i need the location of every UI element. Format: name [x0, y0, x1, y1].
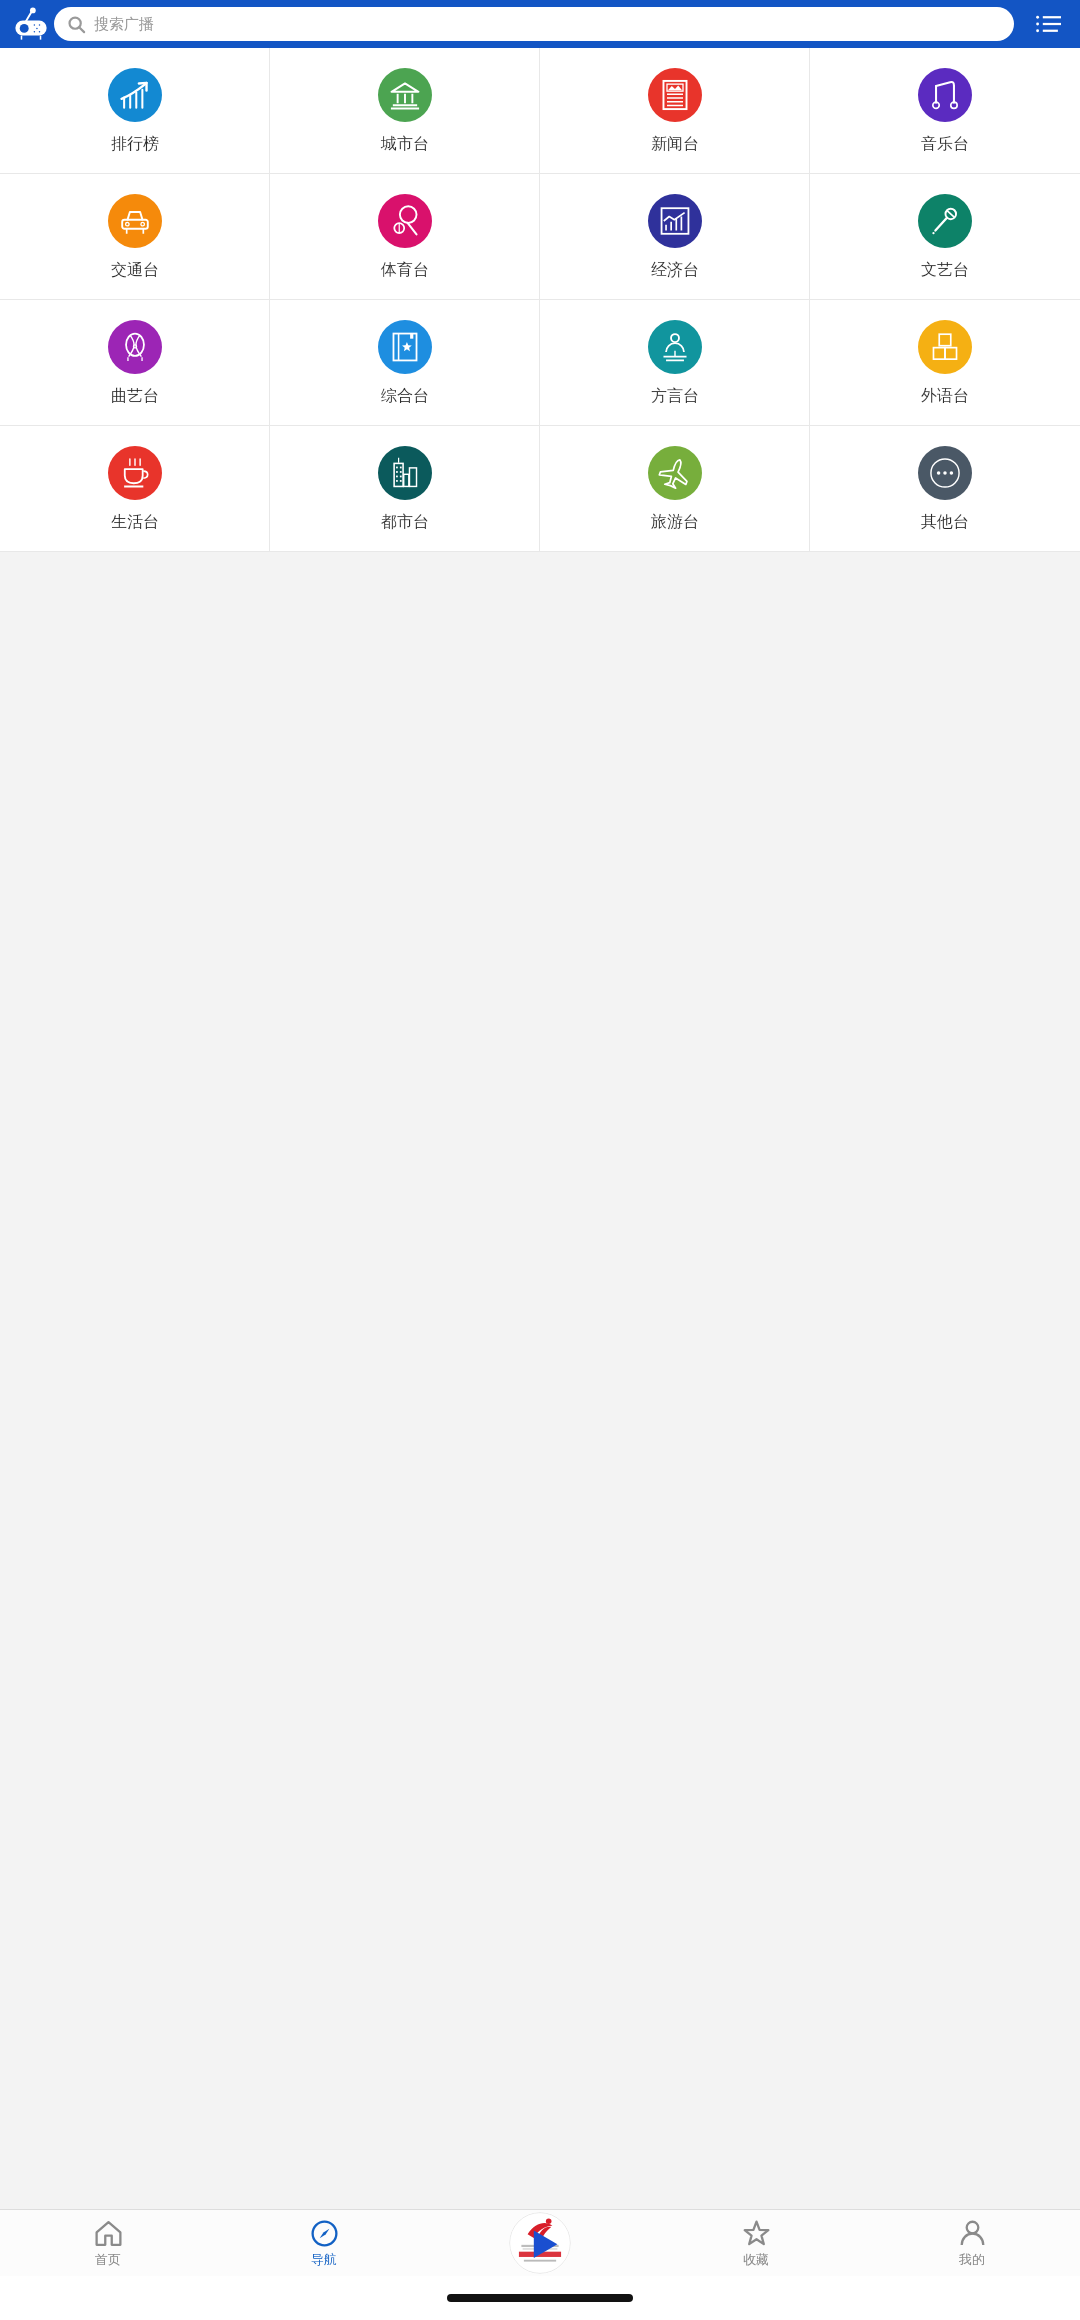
staticText: 收藏	[743, 2251, 769, 2267]
button[interactable]: 我的	[864, 2210, 1080, 2276]
staticText: 体育台	[381, 260, 429, 280]
button[interactable]: 收藏	[648, 2210, 864, 2276]
button[interactable]: Radio	[8, 1, 54, 47]
staticText: 音乐台	[921, 134, 969, 154]
button[interactable]: 都市台	[270, 426, 540, 551]
staticText: 生活台	[111, 512, 159, 532]
button[interactable]: 排行榜	[0, 48, 270, 173]
button[interactable]: List menu	[1026, 2, 1070, 46]
staticText: 旅游台	[651, 512, 699, 532]
button[interactable]: 曲艺台	[0, 300, 270, 425]
button[interactable]: 搜索广播	[54, 7, 1014, 41]
staticText: 经济台	[651, 260, 699, 280]
button[interactable]: 体育台	[270, 174, 540, 299]
button[interactable]: 首页	[0, 2210, 216, 2276]
button[interactable]: 交通台	[0, 174, 270, 299]
staticText: 文艺台	[921, 260, 969, 280]
staticText: 都市台	[381, 512, 429, 532]
button[interactable]: 经济台	[540, 174, 810, 299]
staticText: 导航	[311, 2251, 337, 2267]
button[interactable]: 音乐台	[810, 48, 1080, 173]
staticText: 新闻台	[651, 134, 699, 154]
staticText: 综合台	[381, 386, 429, 406]
staticText: 方言台	[651, 386, 699, 406]
button[interactable]: 文艺台	[810, 174, 1080, 299]
button[interactable]: 生活台	[0, 426, 270, 551]
button[interactable]: 城市台	[270, 48, 540, 173]
staticText: 城市台	[381, 134, 429, 154]
staticText: 曲艺台	[111, 386, 159, 406]
staticText: 其他台	[921, 512, 969, 532]
button[interactable]: 方言台	[540, 300, 810, 425]
staticText: 搜索广播	[94, 15, 154, 34]
button[interactable]: 综合台	[270, 300, 540, 425]
button[interactable]: 外语台	[810, 300, 1080, 425]
staticText: 我的	[959, 2251, 985, 2267]
button[interactable]: 导航	[216, 2210, 432, 2276]
button[interactable]: 新闻台	[540, 48, 810, 173]
button[interactable]: Now playing	[432, 2210, 648, 2276]
staticText: 外语台	[921, 386, 969, 406]
button[interactable]: 其他台	[810, 426, 1080, 551]
staticText: 交通台	[111, 260, 159, 280]
staticText: 首页	[95, 2251, 121, 2267]
staticText: 排行榜	[111, 134, 159, 154]
button[interactable]: 旅游台	[540, 426, 810, 551]
